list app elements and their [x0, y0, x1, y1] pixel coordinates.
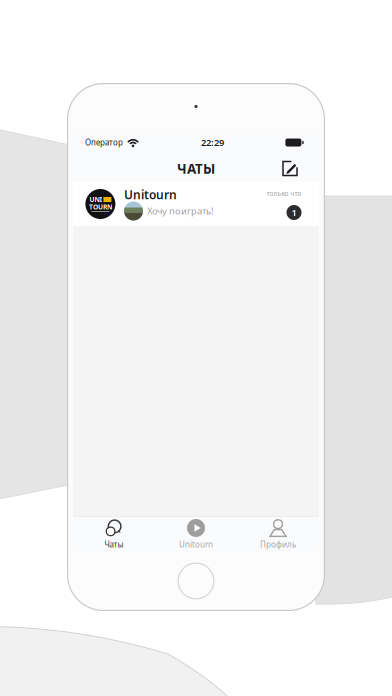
staticText: UNI [89, 195, 102, 204]
button[interactable]: Профиль [237, 517, 319, 551]
staticText: ЧАТЫ [177, 160, 215, 177]
staticText: Unitourn [179, 539, 213, 550]
button[interactable]: UNI [73, 182, 319, 226]
button[interactable]: Чаты [73, 517, 155, 551]
button[interactable]: Новое сообщение [277, 155, 303, 181]
staticText: 1 [291, 206, 296, 219]
button[interactable]: Unitourn [155, 517, 237, 551]
staticText: Чаты [104, 539, 123, 550]
staticText: 22:29 [201, 136, 224, 149]
staticText: Unitourn [124, 186, 177, 202]
staticText: только что [266, 189, 301, 198]
staticText: Оператор [85, 137, 123, 148]
staticText: Профиль [260, 539, 296, 550]
staticText: TOURN [89, 203, 112, 211]
staticText: Хочу поиграть! [147, 205, 214, 217]
